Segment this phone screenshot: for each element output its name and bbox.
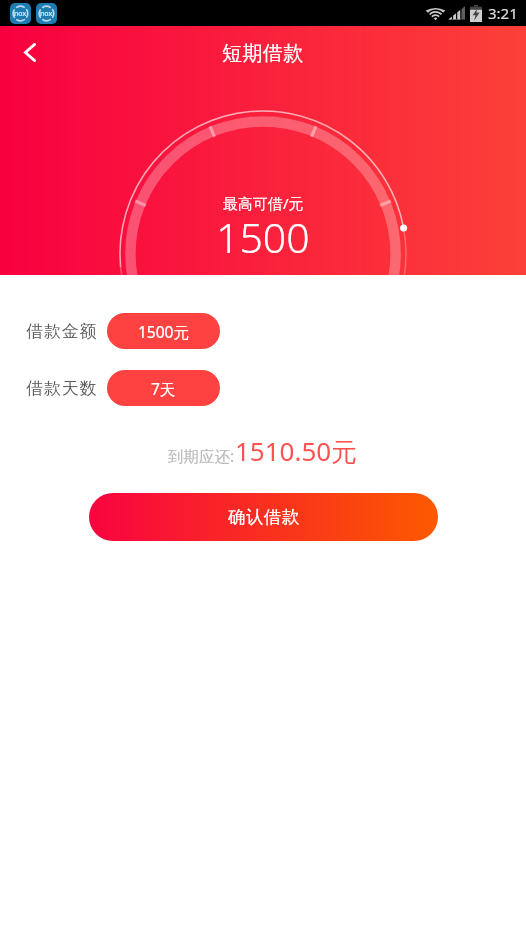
staticText: 借款天数 (26, 378, 98, 399)
button[interactable]: 1500元 (107, 313, 220, 349)
staticText: nox (40, 9, 53, 19)
staticText: 到期应还: (168, 445, 235, 466)
button[interactable]: Back (8, 30, 52, 74)
staticText: 3:21 (488, 3, 518, 23)
staticText: 1500 (216, 209, 310, 265)
button[interactable]: 确认借款 (89, 493, 438, 541)
staticText: 最高可借/元 (223, 193, 304, 213)
staticText: 1510.50元 (235, 433, 358, 469)
staticText: 短期借款 (222, 41, 304, 66)
staticText: nox (14, 9, 27, 19)
staticText: 7天 (151, 378, 176, 399)
button[interactable]: 7天 (107, 370, 220, 406)
staticText: 借款金额 (26, 321, 98, 342)
staticText: 1500元 (138, 321, 189, 342)
staticText: 确认借款 (228, 506, 300, 528)
